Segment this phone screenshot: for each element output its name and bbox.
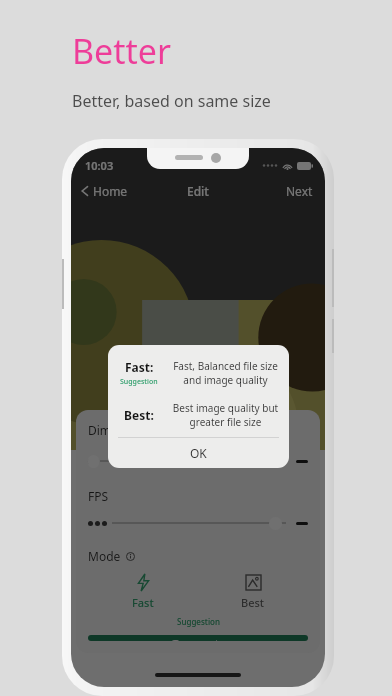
button[interactable]: Mode [88, 548, 135, 564]
staticText: Suggestion [177, 616, 220, 627]
staticText: 10:03 [85, 158, 114, 173]
button[interactable]: OK [108, 438, 289, 468]
button[interactable] [88, 516, 308, 530]
other: Mode info [126, 552, 135, 561]
staticText: Generate [170, 635, 227, 641]
staticText: Fast, Balanced file size and image quali… [170, 359, 281, 387]
staticText: Edit [187, 183, 209, 199]
other: Best mode [245, 574, 262, 591]
staticText: Fast: [125, 359, 154, 375]
button[interactable]: Best mode [198, 574, 308, 610]
staticText: Better, based on same size [72, 90, 271, 112]
button[interactable]: Fast mode [88, 574, 198, 610]
staticText: Home [93, 183, 128, 199]
staticText: Better [72, 28, 172, 74]
staticText: OK [190, 445, 207, 461]
staticText: Best image quality but greater file size [170, 401, 281, 429]
button[interactable]: Back [80, 183, 128, 199]
other: Back [80, 184, 90, 198]
staticText: FPS [88, 488, 109, 504]
staticText: Dimensions [88, 422, 155, 438]
staticText: Best [241, 595, 265, 610]
staticText: Fast [132, 595, 154, 610]
other: Fast mode [135, 574, 152, 591]
staticText: Suggestion [120, 377, 158, 387]
staticText: Mode [88, 548, 121, 564]
button[interactable]: Next [286, 183, 313, 199]
button[interactable]: Generate [88, 635, 308, 641]
staticText: Best: [124, 407, 154, 423]
button[interactable] [88, 454, 308, 468]
